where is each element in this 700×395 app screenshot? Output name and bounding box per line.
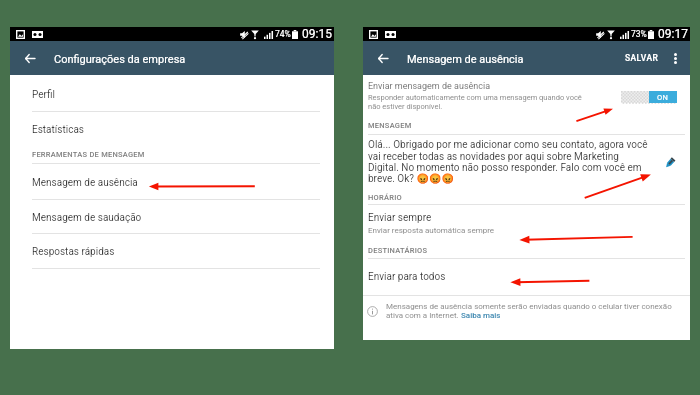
staticText: DESTINATÁRIOS	[368, 246, 428, 255]
button[interactable]: Mensagem de ausência	[10, 164, 334, 199]
staticText: Saiba mais	[461, 311, 501, 320]
staticText: Mensagem de ausência	[407, 53, 524, 66]
staticText: Enviar sempre	[368, 212, 432, 224]
button[interactable]: Mensagem de saudação	[10, 200, 334, 233]
staticText: 74%	[275, 29, 291, 39]
staticText: MENSAGEM	[368, 121, 412, 130]
staticText: Enviar resposta automática sempre	[368, 226, 495, 235]
staticText: Enviar para todos	[368, 271, 446, 283]
button[interactable]: Perfil	[10, 75, 334, 111]
staticText: Configurações da empresa	[54, 53, 186, 66]
button[interactable]: Back	[371, 46, 395, 70]
staticText: não estiver disponível.	[368, 102, 443, 111]
button[interactable]: Respostas rápidas	[10, 234, 334, 268]
button[interactable]: Back	[18, 46, 42, 70]
staticText: Mensagem de ausência	[32, 177, 138, 189]
staticText: FERRAMENTAS DE MENSAGEM	[32, 150, 145, 159]
staticText: Mensagem de saudação	[32, 212, 142, 224]
button[interactable]: Saiba mais	[461, 311, 501, 320]
staticText: ativa com a Internet.	[386, 311, 461, 320]
staticText: HORÁRIO	[368, 193, 402, 202]
button[interactable]: ON	[621, 91, 677, 103]
button[interactable]: Estatísticas	[10, 112, 334, 146]
staticText: Mensagens de ausência somente serão envi…	[386, 302, 672, 311]
staticText: Respostas rápidas	[32, 246, 115, 258]
button[interactable]: Olá... Obrigado por me adicionar como se…	[363, 135, 690, 189]
staticText: Enviar mensagem de ausência	[368, 81, 491, 92]
button[interactable]: Enviar para todos	[363, 259, 690, 295]
staticText: 09:17	[658, 27, 688, 41]
staticText: Olá... Obrigado por me adicionar como se…	[368, 139, 648, 184]
staticText: 09:15	[302, 27, 332, 41]
staticText: Estatísticas	[32, 124, 85, 136]
button[interactable]: Edit message	[661, 154, 679, 172]
button[interactable]: SALVAR	[622, 47, 662, 69]
staticText: Responder automaticamente com uma mensag…	[368, 93, 582, 102]
button[interactable]: Enviar sempre	[363, 205, 690, 242]
staticText: SALVAR	[625, 53, 659, 63]
button[interactable]: More options	[664, 47, 686, 69]
staticText: 73%	[631, 29, 647, 39]
button[interactable]: Enviar mensagem de ausência	[363, 75, 690, 119]
staticText: Perfil	[32, 89, 55, 101]
staticText: ON	[657, 93, 669, 102]
